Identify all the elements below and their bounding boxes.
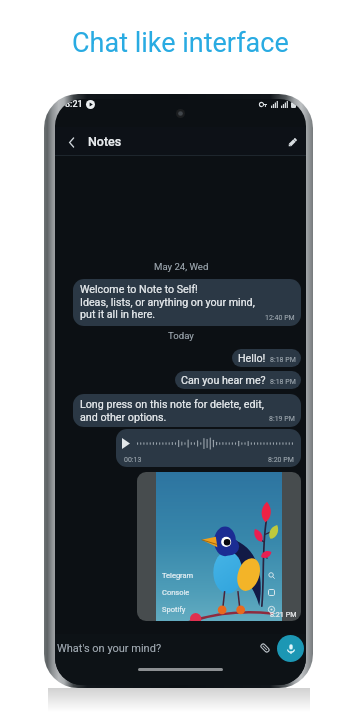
staticText: What's on your mind? (57, 642, 162, 655)
staticText: Console (162, 588, 190, 597)
staticText: 12:40 PM (265, 314, 295, 322)
button[interactable]: Attach file (256, 639, 274, 657)
staticText: Spotify (162, 605, 186, 614)
staticText: Today (168, 330, 194, 341)
button[interactable]: Hello! (232, 349, 301, 367)
button[interactable]: Back (61, 132, 81, 152)
button[interactable]: Record voice note (277, 635, 304, 662)
staticText: 8:21 PM (270, 610, 297, 618)
button[interactable]: Can you hear me? (175, 371, 301, 389)
button[interactable]: 00:13 (116, 429, 301, 467)
staticText: 8:19 PM (269, 415, 295, 423)
staticText: Notes (88, 134, 122, 149)
staticText: 8:20 PM (268, 456, 294, 464)
staticText: Hello! (238, 352, 266, 365)
button[interactable]: Edit (282, 132, 302, 152)
staticText: 00:13 (124, 456, 142, 464)
staticText: May 24, Wed (154, 261, 209, 272)
staticText: Long press on this note for delete, edit… (80, 398, 264, 423)
staticText: Welcome to Note to Self! Ideas, lists, o… (80, 283, 255, 320)
button[interactable]: Welcome to Note to Self! Ideas, lists, o… (73, 279, 301, 326)
staticText: 8:18 PM (270, 356, 296, 364)
staticText: Chat like interface (72, 27, 289, 59)
staticText: 8:21 (65, 99, 83, 110)
button[interactable]: Long press on this note for delete, edit… (73, 394, 301, 427)
staticText: Telegram (162, 571, 194, 580)
button[interactable]: Photo (137, 472, 301, 621)
staticText: Can you hear me? (181, 374, 266, 387)
staticText: 8:18 PM (270, 378, 296, 386)
